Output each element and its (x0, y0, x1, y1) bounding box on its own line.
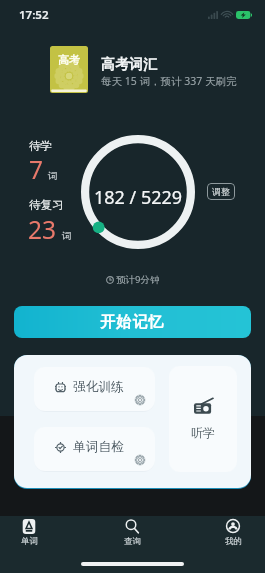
button[interactable]: 查询 (104, 516, 160, 556)
button[interactable]: 强化训练 (34, 367, 155, 411)
staticText: 待复习 (29, 198, 64, 212)
staticText: 单词 (21, 536, 38, 547)
button[interactable]: 开始记忆 (14, 306, 251, 338)
button[interactable]: 我的 (205, 516, 261, 556)
staticText: 每天 15 词，预计 337 天刷完 (101, 74, 237, 88)
staticText: 我的 (225, 536, 242, 547)
staticText: 182 / 5229 (94, 185, 183, 210)
staticText: 开始记忆 (100, 313, 165, 332)
staticText: 查询 (124, 536, 141, 547)
button[interactable]: 调整 (207, 183, 235, 200)
staticText: 23 (28, 213, 57, 246)
staticText: 词 (48, 170, 58, 182)
staticText: 高考词汇 (101, 56, 157, 74)
staticText: 强化训练 (73, 379, 124, 395)
button[interactable]: 单词 (1, 516, 57, 556)
staticText: 高考 (58, 53, 80, 67)
button[interactable]: 单词自检 (34, 427, 155, 471)
button[interactable]: 听学 (169, 366, 237, 472)
staticText: 单词自检 (73, 439, 124, 455)
staticText: 7 (29, 153, 44, 186)
staticText: 词 (62, 230, 72, 242)
staticText: 调整 (212, 186, 230, 197)
staticText: 预计9分钟 (116, 273, 160, 286)
staticText: 17:52 (19, 7, 49, 23)
staticText: 待学 (29, 139, 52, 153)
staticText: 听学 (191, 425, 215, 440)
